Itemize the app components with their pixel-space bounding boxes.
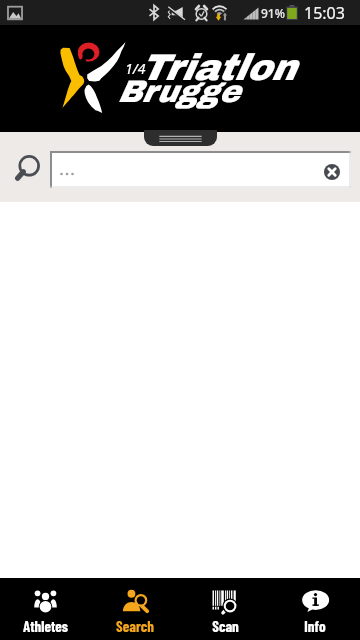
- button[interactable]: Expand panel: [144, 130, 217, 146]
- staticText: 15:03: [304, 2, 345, 24]
- staticText: 1/4: [125, 59, 146, 78]
- button[interactable]: Info: [270, 578, 360, 640]
- button[interactable]: Clear text: [50, 151, 351, 188]
- staticText: Athletes: [23, 617, 68, 635]
- button[interactable]: Clear text: [324, 164, 340, 180]
- staticText: Scan: [212, 617, 239, 635]
- button[interactable]: Athletes: [0, 578, 90, 640]
- staticText: Search: [116, 617, 154, 635]
- staticText: Triatlon: [139, 48, 296, 88]
- staticText: Info: [304, 617, 326, 635]
- button[interactable]: Scan: [180, 578, 270, 640]
- button[interactable]: Search: [90, 578, 180, 640]
- button[interactable]: Search: [1, 147, 43, 187]
- staticText: Brugge: [117, 75, 239, 109]
- staticText: 91%: [261, 5, 285, 21]
